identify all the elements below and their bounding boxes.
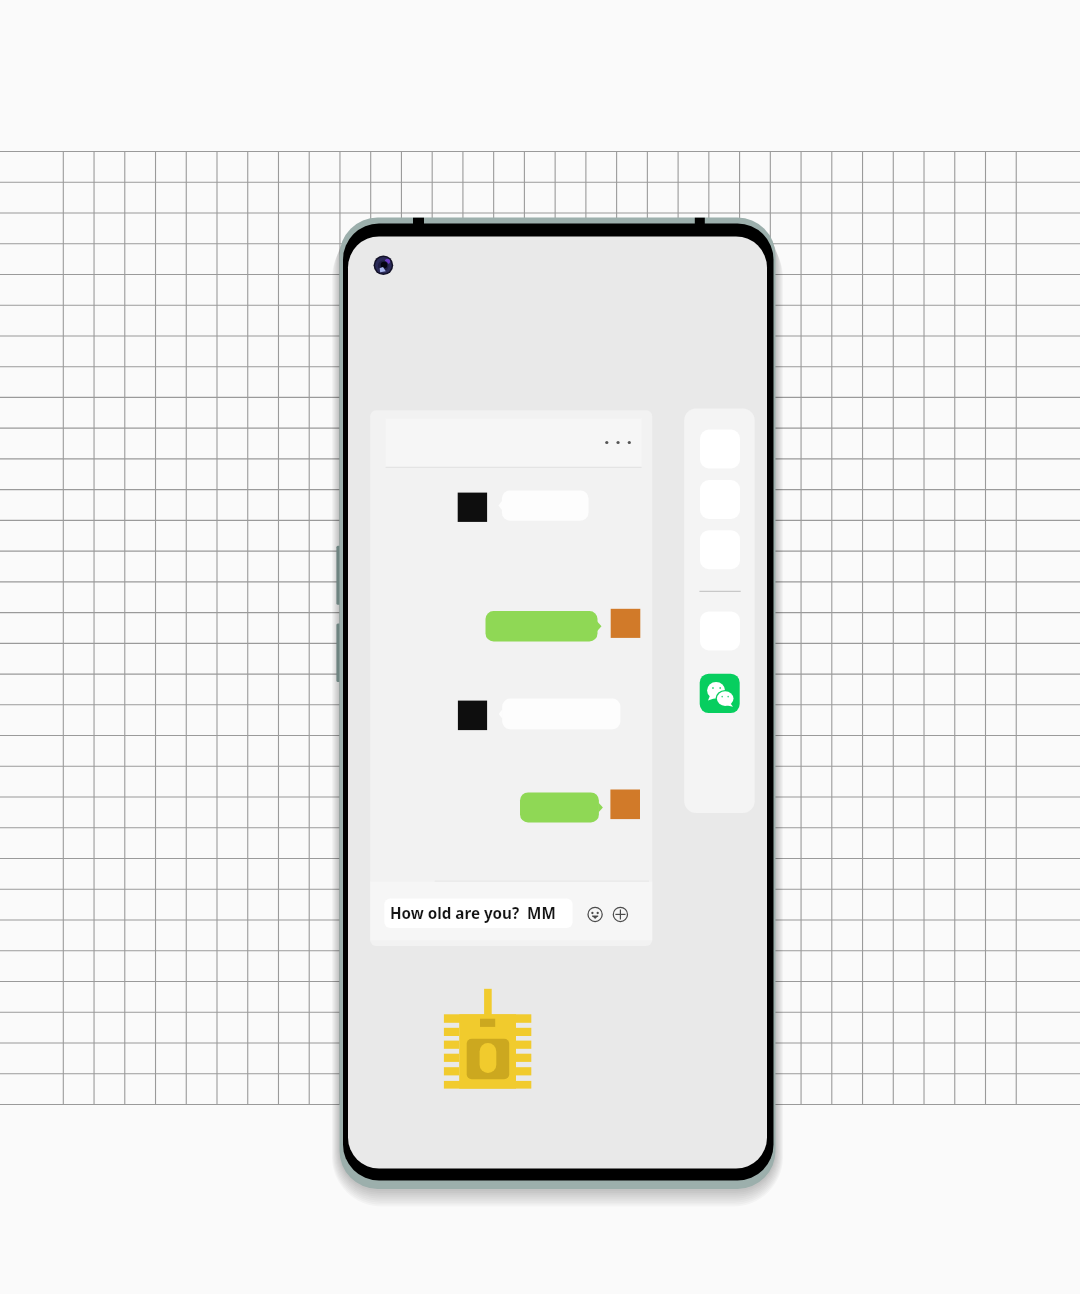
button[interactable]: Message from contact [458,699,621,731]
staticText: How old are you? MM [390,903,556,924]
button[interactable]: WeChat [700,674,740,713]
button[interactable]: Message input [384,898,572,928]
button[interactable]: Emoji [585,904,605,924]
button[interactable]: Message you sent [520,790,640,823]
button[interactable]: More options [596,430,642,456]
button[interactable]: Message you sent [486,609,641,642]
button[interactable]: Add attachment [610,904,630,924]
button[interactable]: Message from contact [458,490,589,521]
